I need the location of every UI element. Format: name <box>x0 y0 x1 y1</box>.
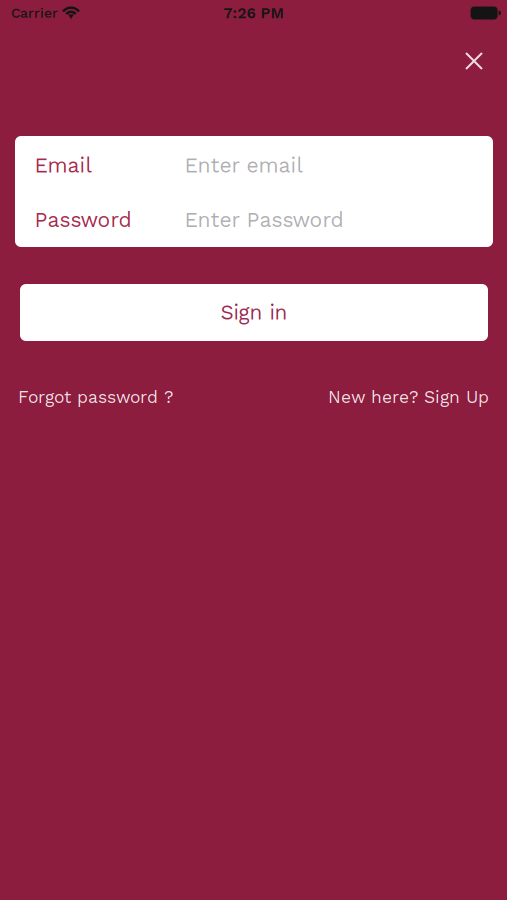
staticText: Forgot password ? <box>18 387 173 407</box>
staticText: Enter Password <box>185 207 344 232</box>
staticText: Carrier <box>11 5 58 21</box>
staticText: New here? Sign Up <box>328 387 489 407</box>
staticText: Email <box>35 153 92 178</box>
staticText: Password <box>35 207 132 232</box>
staticText: Sign in <box>220 300 287 325</box>
staticText: Enter email <box>185 153 303 178</box>
button[interactable]: New here? Sign Up <box>328 387 489 407</box>
button[interactable]: Close <box>452 39 496 83</box>
button[interactable]: Forgot password ? <box>18 387 173 407</box>
button[interactable]: Sign in <box>20 284 488 341</box>
staticText: 7:26 PM <box>223 4 283 22</box>
